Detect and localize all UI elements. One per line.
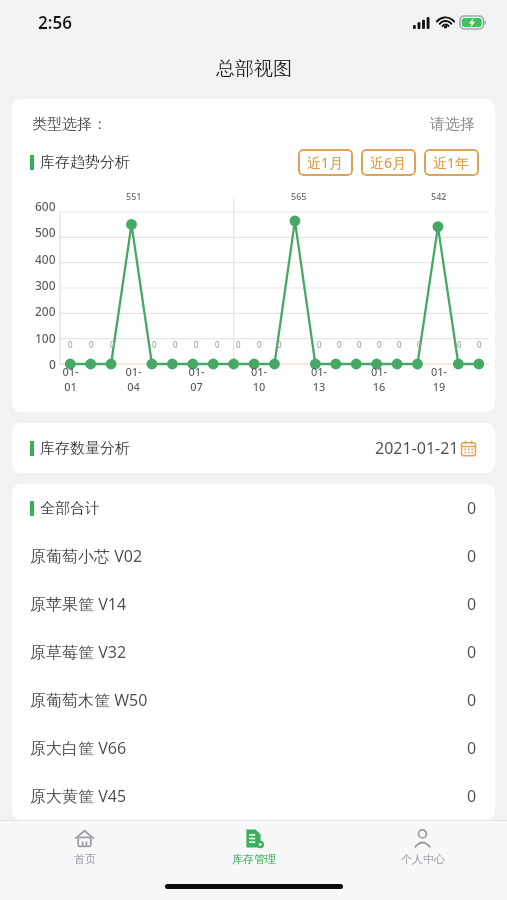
button[interactable]: 近6月 bbox=[361, 149, 416, 176]
staticText: 全部合计 bbox=[40, 499, 100, 518]
staticText: 0 bbox=[277, 339, 282, 350]
staticText: 个人中心 bbox=[401, 852, 445, 866]
staticText: 原葡萄木筐 W50 bbox=[30, 689, 148, 711]
staticText: 0 bbox=[417, 339, 422, 350]
staticText: 500 bbox=[35, 224, 56, 240]
staticText: 400 bbox=[35, 251, 56, 267]
staticText: 0 bbox=[236, 339, 241, 350]
staticText: 01-01 bbox=[60, 364, 81, 394]
staticText: 0 bbox=[467, 497, 477, 519]
staticText: 0 bbox=[337, 339, 342, 350]
staticText: 0 bbox=[49, 356, 56, 372]
staticText: 2021-01-21 bbox=[375, 437, 459, 459]
button[interactable]: 类型选择： bbox=[12, 113, 495, 136]
staticText: 库存数量分析 bbox=[40, 439, 130, 458]
button[interactable]: 原葡萄小芯 V02 bbox=[12, 532, 495, 580]
other: Pick date bbox=[460, 440, 477, 457]
staticText: 0 bbox=[467, 593, 477, 615]
button[interactable]: 原葡萄木筐 W50 bbox=[12, 676, 495, 724]
button[interactable]: 近1月 bbox=[298, 149, 353, 176]
staticText: 0 bbox=[377, 339, 382, 350]
staticText: 原大白筐 V66 bbox=[30, 737, 127, 759]
staticText: 0 bbox=[397, 339, 402, 350]
button[interactable]: 个人中心 bbox=[338, 821, 507, 873]
staticText: 原大黄筐 V45 bbox=[30, 785, 127, 807]
staticText: 0 bbox=[467, 641, 477, 663]
staticText: 0 bbox=[89, 339, 94, 350]
button[interactable]: 原苹果筐 V14 bbox=[12, 580, 495, 628]
staticText: 600 bbox=[35, 198, 56, 214]
staticText: 0 bbox=[457, 339, 462, 350]
staticText: 01-19 bbox=[429, 364, 449, 394]
staticText: 01-13 bbox=[309, 364, 329, 394]
button[interactable]: 首页 bbox=[0, 821, 169, 873]
staticText: 库存管理 bbox=[232, 852, 276, 866]
staticText: 总部视图 bbox=[216, 57, 292, 81]
staticText: 0 bbox=[152, 339, 157, 350]
staticText: 100 bbox=[35, 330, 56, 346]
staticText: 库存趋势分析 bbox=[40, 153, 130, 172]
staticText: 近1月 bbox=[307, 153, 344, 172]
staticText: 551 bbox=[126, 190, 142, 202]
staticText: 300 bbox=[35, 277, 56, 293]
staticText: 0 bbox=[173, 339, 178, 350]
button[interactable]: 原大黄筐 V45 bbox=[12, 772, 495, 820]
staticText: 0 bbox=[477, 339, 482, 350]
staticText: 01-10 bbox=[249, 364, 269, 394]
staticText: 200 bbox=[35, 303, 56, 319]
staticText: 请选择 bbox=[430, 115, 475, 134]
button[interactable]: 全部合计 bbox=[12, 484, 495, 532]
staticText: 0 bbox=[357, 339, 362, 350]
staticText: 2:56 bbox=[38, 11, 72, 34]
staticText: 0 bbox=[317, 339, 322, 350]
staticText: 原苹果筐 V14 bbox=[30, 593, 127, 615]
staticText: 0 bbox=[194, 339, 199, 350]
staticText: 首页 bbox=[74, 852, 96, 866]
staticText: 01-07 bbox=[186, 364, 207, 394]
button[interactable]: 库存管理 bbox=[169, 821, 338, 873]
staticText: 0 bbox=[257, 339, 262, 350]
staticText: 0 bbox=[467, 737, 477, 759]
staticText: 原葡萄小芯 V02 bbox=[30, 545, 143, 567]
staticText: 类型选择： bbox=[32, 115, 107, 134]
staticText: 0 bbox=[467, 545, 477, 567]
staticText: 原草莓筐 V32 bbox=[30, 641, 127, 663]
button[interactable]: 原大白筐 V66 bbox=[12, 724, 495, 772]
staticText: 565 bbox=[291, 190, 307, 202]
button[interactable]: 原草莓筐 V32 bbox=[12, 628, 495, 676]
staticText: 01-04 bbox=[123, 364, 144, 394]
staticText: 0 bbox=[467, 785, 477, 807]
button[interactable]: 近1年 bbox=[424, 149, 479, 176]
staticText: 0 bbox=[68, 339, 73, 350]
staticText: 0 bbox=[467, 689, 477, 711]
staticText: 01-16 bbox=[369, 364, 389, 394]
button[interactable]: 库存数量分析 bbox=[12, 423, 495, 473]
staticText: 近6月 bbox=[370, 153, 407, 172]
staticText: 近1年 bbox=[433, 153, 470, 172]
staticText: 0 bbox=[110, 339, 115, 350]
staticText: 0 bbox=[215, 339, 220, 350]
staticText: 542 bbox=[431, 190, 447, 202]
